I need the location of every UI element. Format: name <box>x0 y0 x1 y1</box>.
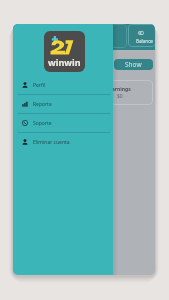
button[interactable]: Balance <box>128 24 155 47</box>
button[interactable]: Reporte <box>13 95 113 113</box>
staticText: Show <box>125 60 142 69</box>
staticText: Perfil <box>33 82 46 89</box>
staticText: Eliminar cuenta <box>33 139 70 146</box>
staticText: Balance <box>136 38 153 44</box>
staticText: $0 <box>117 93 123 100</box>
staticText: Today's earnings <box>89 86 131 93</box>
staticText: Reporte <box>33 101 52 108</box>
button[interactable]: Eliminar cuenta <box>13 133 113 151</box>
button[interactable]: Show <box>114 59 153 70</box>
button[interactable]: Wallet <box>98 24 127 48</box>
button[interactable]: Perfil <box>13 76 113 94</box>
button[interactable]: Soporte <box>13 114 113 132</box>
staticText: winwin <box>48 56 81 68</box>
staticText: Soporte <box>33 120 52 127</box>
